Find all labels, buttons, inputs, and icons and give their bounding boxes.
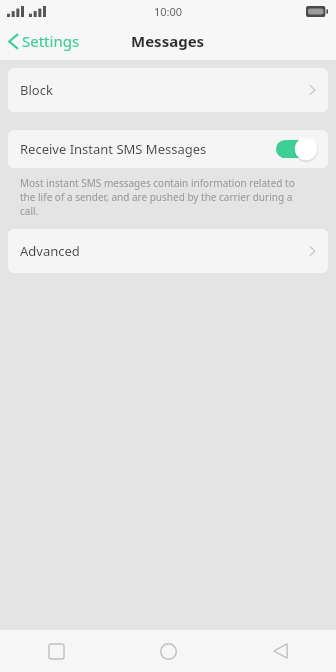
staticText: Advanced [20, 242, 309, 260]
staticText: 10:00 [154, 4, 183, 19]
staticText: Block [20, 81, 309, 99]
button[interactable]: Settings [0, 25, 90, 57]
button[interactable]: Block [8, 68, 328, 112]
button[interactable]: Recents [0, 630, 112, 672]
button[interactable]: Receive Instant SMS Messages [8, 130, 328, 168]
button[interactable]: Receive Instant SMS Messages toggle [276, 137, 318, 161]
button[interactable]: Home [112, 630, 224, 672]
staticText: Receive Instant SMS Messages [20, 140, 276, 158]
button[interactable]: Back [224, 630, 336, 672]
button[interactable]: Advanced [8, 229, 328, 273]
staticText: Settings [22, 31, 80, 51]
staticText: Most instant SMS messages contain inform… [20, 176, 310, 218]
staticText: Messages [131, 31, 205, 51]
